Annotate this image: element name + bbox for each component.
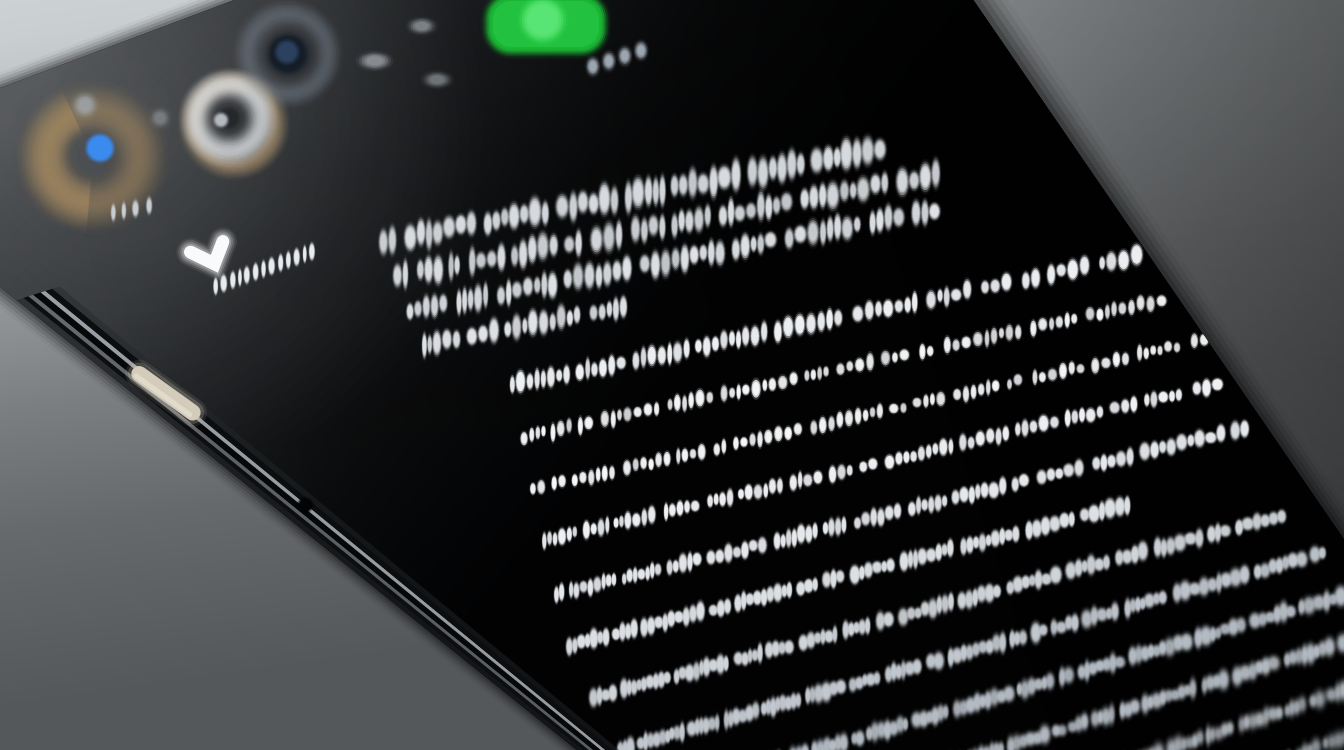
button[interactable]: Note page on phone screen (0, 0, 1344, 750)
button[interactable]: Get (7, 12, 108, 61)
button[interactable]: Recording indicator (45, 0, 166, 56)
button[interactable]: Simplified, done (21, 21, 182, 89)
